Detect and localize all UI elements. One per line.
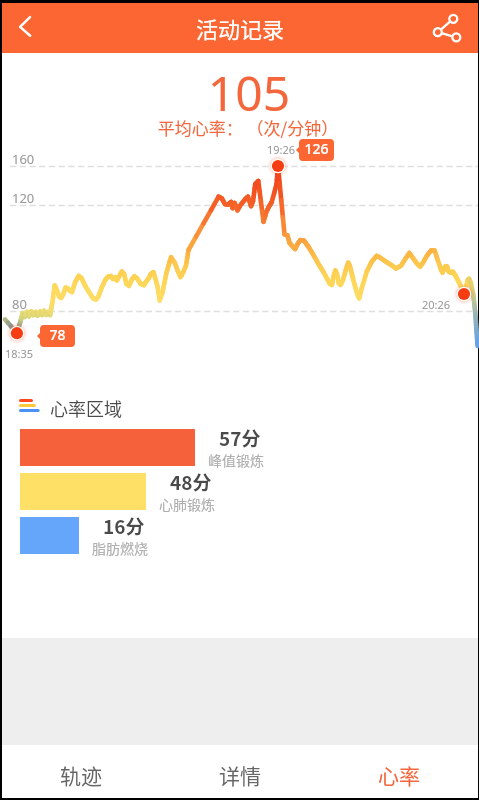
button[interactable]: Share [429, 3, 477, 50]
staticText: 120 [12, 189, 35, 207]
staticText: 105 [11, 60, 479, 125]
staticText: 轨迹 [60, 760, 102, 790]
staticText: 19:26 [267, 142, 296, 157]
staticText: 心率区域 [50, 395, 122, 421]
staticText: 心肺锻炼 [159, 494, 215, 514]
staticText: 心率 [378, 760, 420, 790]
staticText: 160 [12, 150, 35, 168]
staticText: 平均心率： （次/分钟） [10, 115, 479, 140]
staticText: 20:26 [422, 297, 451, 312]
staticText: 126 [299, 139, 334, 161]
staticText: 活动记录 [196, 12, 285, 44]
staticText: 48分 [170, 468, 212, 496]
button[interactable]: Back [2, 3, 48, 53]
staticText: 18:35 [5, 346, 34, 361]
staticText: 78 [40, 325, 75, 347]
staticText: 脂肪燃烧 [92, 538, 148, 558]
staticText: 峰值锻炼 [208, 450, 264, 470]
staticText: 57分 [219, 424, 261, 452]
staticText: 16分 [103, 512, 145, 540]
staticText: 详情 [219, 760, 261, 790]
button[interactable]: 轨迹 [2, 748, 160, 800]
button[interactable]: 详情 [160, 748, 319, 800]
staticText: 80 [12, 295, 27, 313]
button[interactable]: 心率 [319, 748, 478, 800]
